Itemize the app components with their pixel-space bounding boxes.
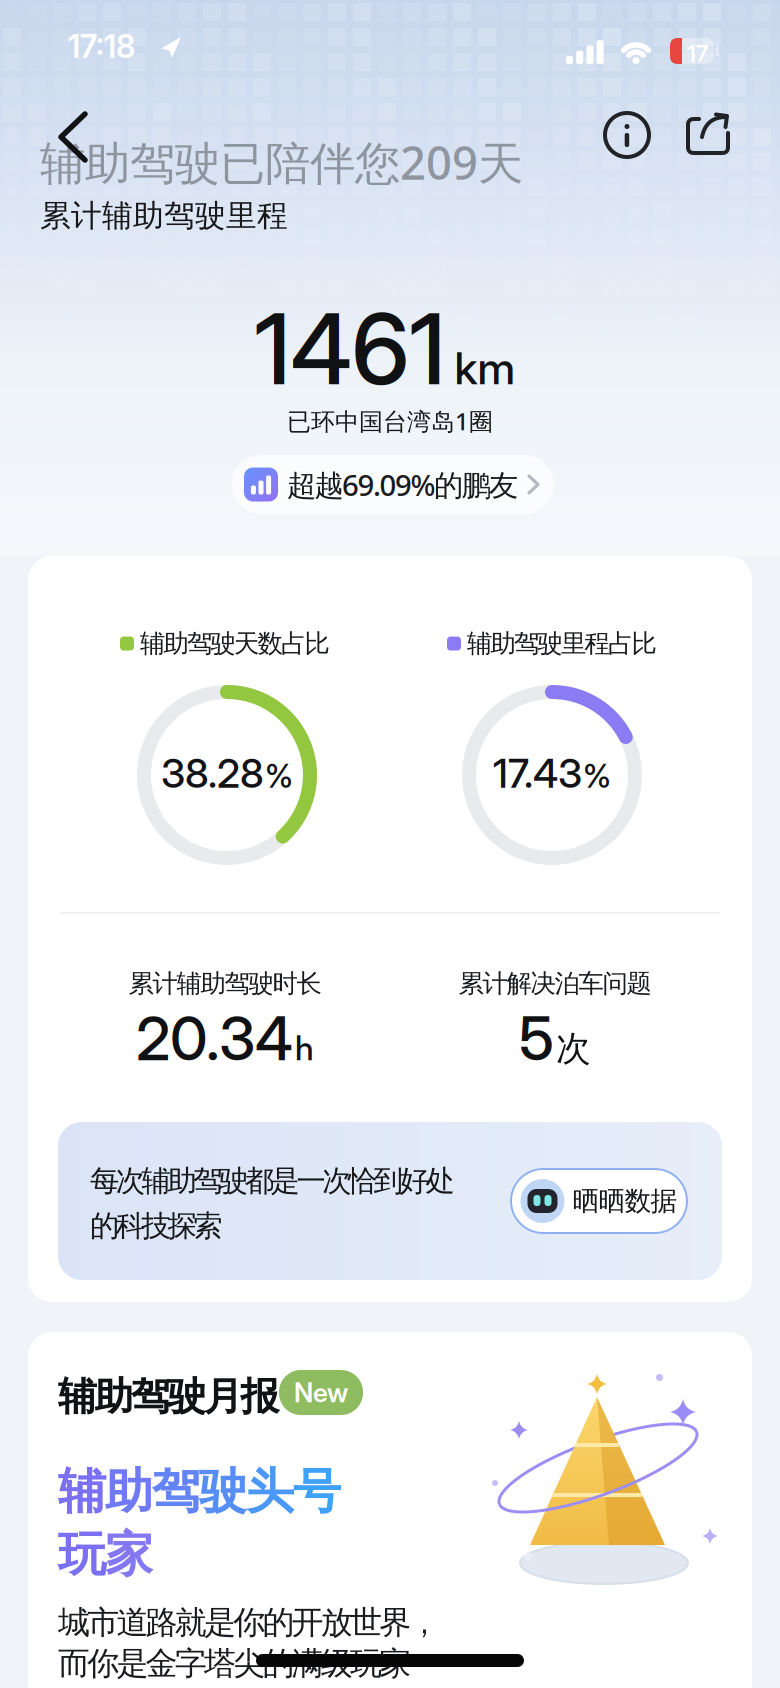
- staticText: 而你是金字塔尖的满级玩家: [58, 1644, 411, 1683]
- staticText: 5: [519, 1002, 554, 1075]
- staticText: 家: [105, 1525, 153, 1584]
- button[interactable]: 超越69.09%的鹏友: [232, 455, 554, 514]
- staticText: 城市道路就是你的开放世界，: [58, 1603, 440, 1642]
- staticText: 辅助驾驶里程占比: [467, 628, 656, 659]
- staticText: %: [265, 757, 293, 795]
- staticText: 17:18: [68, 27, 135, 66]
- button[interactable]: 辅助驾驶月报: [28, 1332, 752, 1688]
- staticText: 驶: [199, 1462, 247, 1521]
- staticText: 已环中国台湾岛1圈: [287, 405, 493, 437]
- staticText: 38.28: [161, 749, 264, 797]
- staticText: 17.43: [493, 749, 582, 797]
- staticText: 辅助驾驶天数占比: [140, 628, 329, 659]
- button[interactable]: Info: [601, 109, 649, 157]
- staticText: km: [454, 342, 515, 395]
- staticText: 玩: [58, 1525, 106, 1584]
- staticText: 晒晒数据: [572, 1185, 677, 1217]
- staticText: 17: [687, 40, 708, 67]
- staticText: 次: [556, 1027, 591, 1070]
- staticText: 1461: [254, 290, 445, 408]
- button[interactable]: 晒晒数据: [510, 1168, 688, 1234]
- button[interactable]: Share: [684, 109, 732, 157]
- staticText: 超越69.09%的鹏友: [287, 465, 518, 504]
- staticText: 累计辅助驾驶时长: [128, 968, 321, 999]
- staticText: 的科技探索: [90, 1208, 222, 1244]
- staticText: 辅助驾驶月报: [58, 1373, 279, 1420]
- staticText: 驾: [152, 1462, 200, 1521]
- staticText: h: [295, 1028, 314, 1068]
- staticText: 累计解决泊车问题: [458, 968, 651, 999]
- staticText: 助: [105, 1462, 153, 1521]
- staticText: 20.34: [136, 1002, 293, 1075]
- staticText: 头: [246, 1462, 294, 1521]
- staticText: New: [294, 1376, 348, 1409]
- staticText: %: [583, 757, 611, 795]
- staticText: 号: [293, 1462, 341, 1521]
- staticText: 辅助驾驶已陪伴您209天: [40, 132, 523, 192]
- staticText: 每次辅助驾驶都是一次恰到好处: [90, 1163, 454, 1199]
- button[interactable]: Back: [58, 111, 90, 163]
- staticText: 辅: [58, 1462, 106, 1521]
- staticText: 累计辅助驾驶里程: [40, 197, 288, 235]
